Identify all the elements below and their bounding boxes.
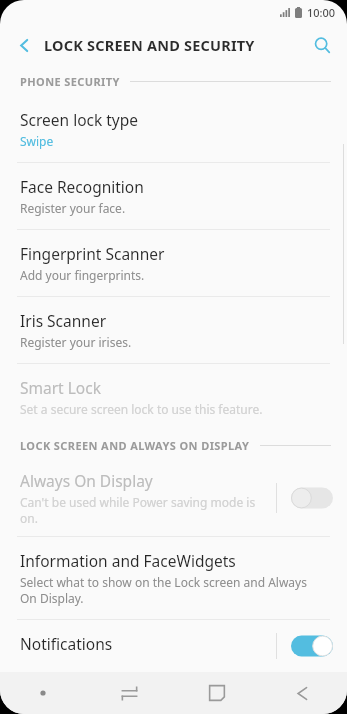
button[interactable]: Notifications: [0, 620, 347, 672]
staticText: PHONE SECURITY: [20, 74, 120, 89]
staticText: Swipe: [20, 133, 54, 149]
button[interactable]: Recent apps: [86, 672, 173, 714]
staticText: LOCK SCREEN AND SECURITY: [44, 35, 255, 55]
staticText: Fingerprint Scanner: [20, 243, 165, 264]
button[interactable]: Iris Scanner: [0, 297, 347, 363]
staticText: Register your face.: [20, 200, 126, 216]
staticText: Iris Scanner: [20, 310, 107, 331]
button[interactable]: Always On Display: [0, 460, 347, 536]
staticText: Smart Lock: [20, 377, 101, 398]
staticText: Select what to show on the Lock screen a…: [20, 574, 307, 606]
staticText: Can't be used while Power saving mode is…: [20, 494, 276, 526]
button[interactable]: Home: [173, 672, 260, 714]
staticText: Notifications: [20, 633, 113, 654]
staticText: LOCK SCREEN AND ALWAYS ON DISPLAY: [20, 438, 250, 453]
button[interactable]: Search: [305, 28, 339, 62]
staticText: 10:00: [307, 5, 336, 20]
button[interactable]: Screen lock type: [0, 96, 347, 162]
staticText: Add your fingerprints.: [20, 267, 145, 283]
button[interactable]: Fingerprint Scanner: [0, 230, 347, 296]
button[interactable]: Back: [8, 29, 40, 61]
button[interactable]: Toggle on: [291, 633, 333, 659]
button[interactable]: Keyboard indicator: [0, 672, 86, 714]
staticText: Screen lock type: [20, 109, 139, 130]
staticText: Register your irises.: [20, 334, 132, 350]
staticText: Information and FaceWidgets: [20, 550, 236, 571]
button[interactable]: Back: [260, 672, 347, 714]
button[interactable]: Face Recognition: [0, 163, 347, 229]
staticText: Face Recognition: [20, 176, 144, 197]
button[interactable]: Information and FaceWidgets: [0, 537, 347, 619]
button[interactable]: Smart Lock: [0, 364, 347, 430]
staticText: Set a secure screen lock to use this fea…: [20, 401, 263, 417]
button[interactable]: Toggle off: [291, 485, 333, 511]
staticText: Always On Display: [20, 470, 153, 491]
